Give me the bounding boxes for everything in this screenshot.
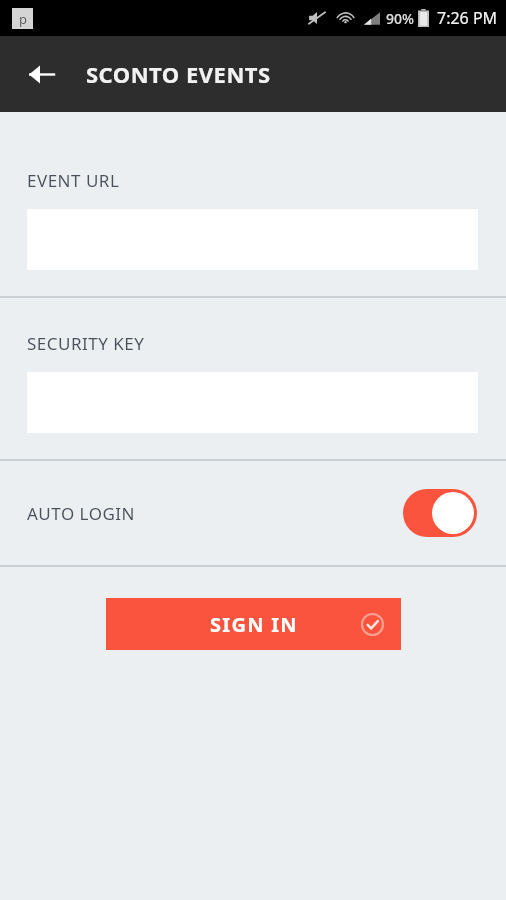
- button[interactable]: Back: [18, 51, 64, 97]
- staticText: 90%: [386, 9, 414, 28]
- staticText: p: [19, 10, 27, 28]
- staticText: SIGN IN: [210, 611, 298, 638]
- staticText: AUTO LOGIN: [27, 502, 136, 525]
- staticText: SECURITY KEY: [27, 332, 145, 355]
- staticText: 7:26 PM: [437, 7, 498, 29]
- staticText: SCONTO EVENTS: [86, 59, 271, 89]
- button[interactable]: SIGN IN: [106, 598, 401, 650]
- staticText: EVENT URL: [27, 169, 120, 192]
- button[interactable]: Auto login toggle, on: [403, 489, 477, 537]
- button[interactable]: AUTO LOGIN: [0, 461, 506, 565]
